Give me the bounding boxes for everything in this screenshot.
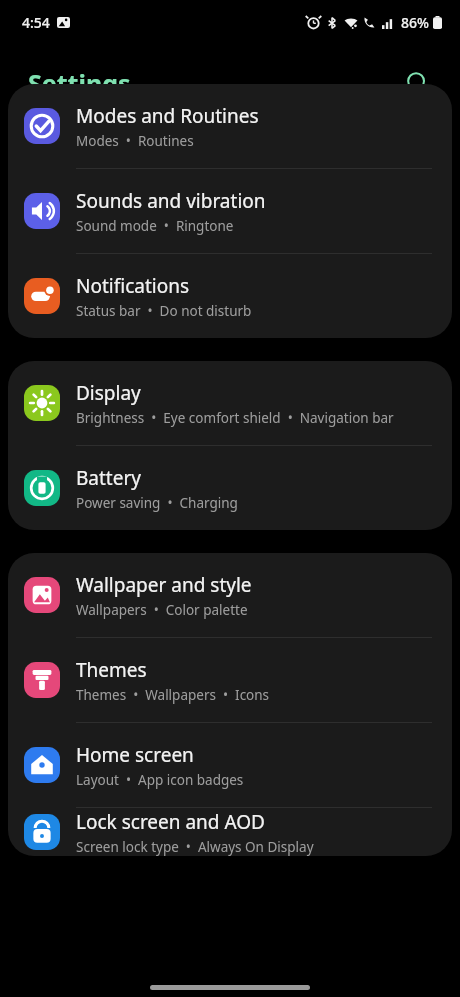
- staticText: Lock screen and AOD: [76, 809, 265, 835]
- staticText: Home screen: [76, 742, 194, 768]
- staticText: Brightness • Eye comfort shield • Naviga…: [76, 409, 394, 427]
- staticText: Themes • Wallpapers • Icons: [76, 686, 270, 704]
- button[interactable]: Battery: [8, 446, 452, 530]
- staticText: Screen lock type • Always On Display: [76, 838, 314, 856]
- staticText: 86%: [401, 13, 429, 32]
- staticText: Battery: [76, 465, 141, 491]
- staticText: Display: [76, 380, 141, 406]
- staticText: Status bar • Do not disturb: [76, 302, 252, 320]
- staticText: Layout • App icon badges: [76, 771, 244, 789]
- staticText: Sounds and vibration: [76, 188, 266, 214]
- staticText: Settings: [28, 66, 131, 100]
- staticText: Wallpaper and style: [76, 572, 252, 598]
- staticText: Modes • Routines: [76, 132, 194, 150]
- staticText: Wallpapers • Color palette: [76, 601, 248, 619]
- button[interactable]: Search: [394, 59, 442, 107]
- button[interactable]: Modes and Routines: [8, 84, 452, 168]
- button[interactable]: Sounds and vibration: [8, 169, 452, 253]
- staticText: Themes: [76, 657, 147, 683]
- staticText: Power saving • Charging: [76, 494, 238, 512]
- button[interactable]: Home screen: [8, 723, 452, 807]
- staticText: Modes and Routines: [76, 103, 259, 129]
- staticText: Sound mode • Ringtone: [76, 217, 234, 235]
- button[interactable]: Display: [8, 361, 452, 445]
- button[interactable]: Notifications: [8, 254, 452, 338]
- button[interactable]: Wallpaper and style: [8, 553, 452, 637]
- button[interactable]: Lock screen and AOD: [8, 808, 452, 856]
- staticText: 4:54: [22, 13, 50, 32]
- button[interactable]: Themes: [8, 638, 452, 722]
- staticText: Notifications: [76, 273, 190, 299]
